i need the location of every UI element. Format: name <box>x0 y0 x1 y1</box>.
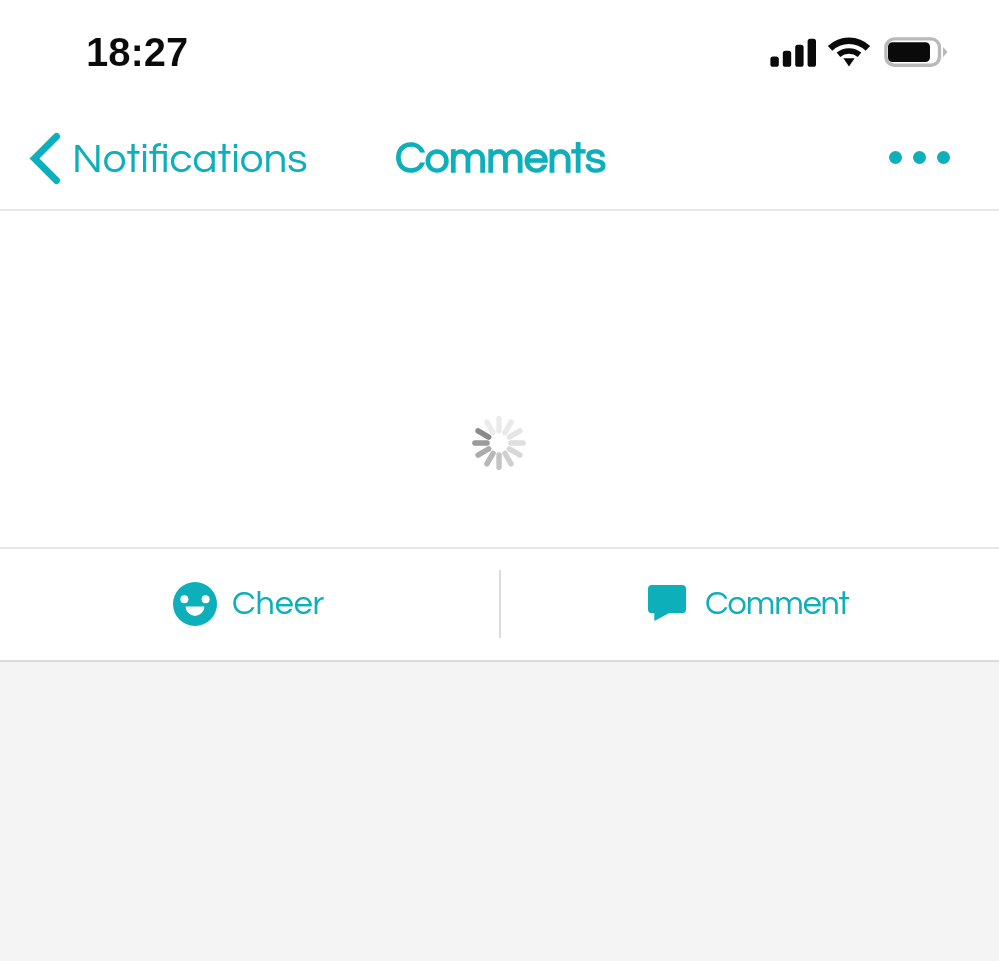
staticText: 18:27 <box>86 30 189 75</box>
staticText: Comment <box>705 586 849 621</box>
staticText: Notifications <box>72 138 308 181</box>
button[interactable]: More options <box>853 123 999 192</box>
button[interactable]: Back to Notifications <box>0 120 322 195</box>
button[interactable]: Cheer <box>0 549 499 660</box>
button[interactable]: Comment <box>499 549 999 660</box>
staticText: Cheer <box>232 586 325 621</box>
staticText: Comments <box>395 136 606 181</box>
